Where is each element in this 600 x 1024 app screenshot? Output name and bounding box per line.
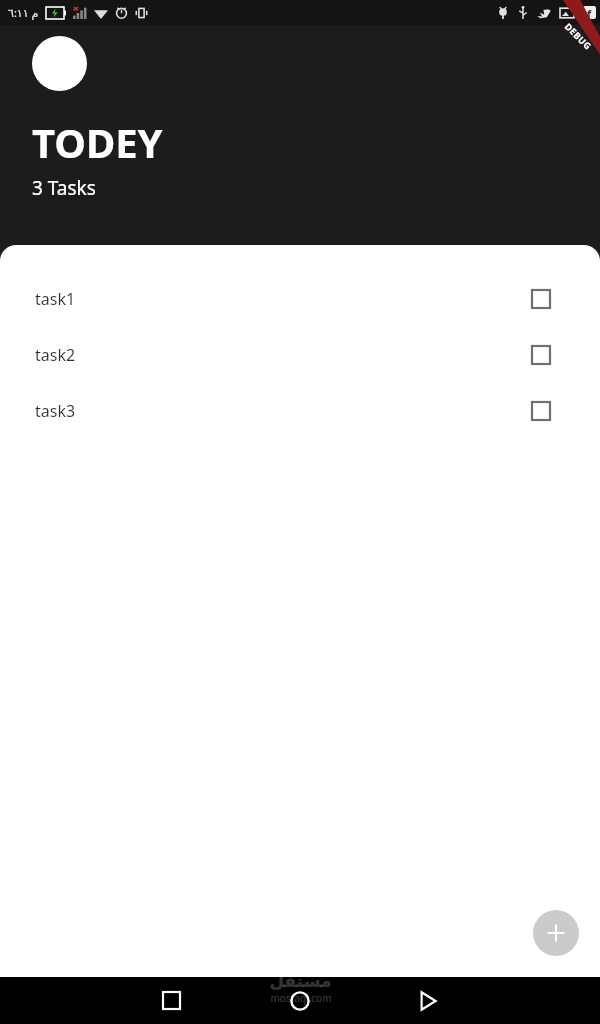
staticText: task1: [35, 288, 76, 310]
button[interactable]: task2: [0, 327, 600, 383]
staticText: 3 Tasks: [32, 175, 96, 201]
staticText: task3: [35, 400, 76, 422]
button[interactable]: Add task: [533, 910, 579, 956]
button[interactable]: task3: [0, 383, 600, 439]
staticText: mostaql.com: [270, 991, 332, 1005]
button[interactable]: Recent apps: [143, 977, 199, 1024]
button[interactable]: Toggle task1: [532, 290, 550, 308]
button[interactable]: Toggle task3: [532, 402, 550, 420]
staticText: task2: [35, 344, 76, 366]
staticText: TODEY: [32, 115, 163, 169]
staticText: مستقل: [269, 971, 332, 991]
button[interactable]: Toggle task2: [532, 346, 550, 364]
button[interactable]: Profile: [32, 36, 87, 91]
button[interactable]: Home: [272, 977, 328, 1024]
staticText: DEBUG: [563, 20, 594, 52]
staticText: م ٦:١١: [8, 5, 39, 20]
staticText: f: [587, 6, 592, 19]
button[interactable]: task1: [0, 271, 600, 327]
button[interactable]: Back: [400, 977, 456, 1024]
